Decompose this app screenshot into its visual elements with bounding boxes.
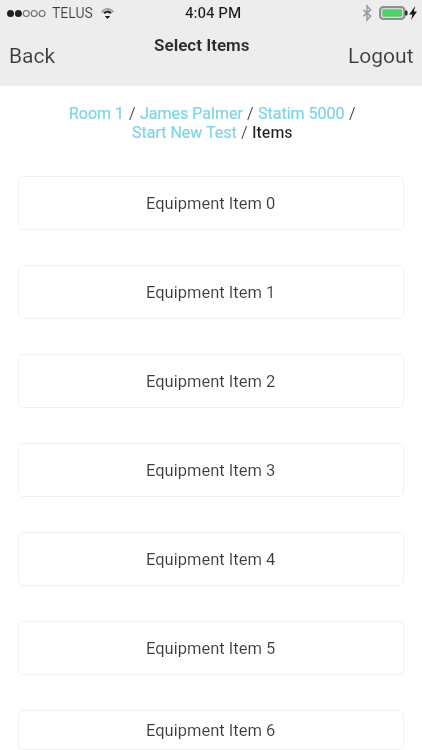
other: Battery full bbox=[379, 6, 408, 20]
staticText: 4:04 PM bbox=[185, 4, 242, 22]
staticText: Items bbox=[252, 123, 293, 142]
staticText: Equipment Item 1 bbox=[146, 283, 276, 302]
button[interactable]: Equipment Item 3 bbox=[18, 443, 404, 497]
staticText: Back bbox=[9, 44, 56, 69]
staticText: Equipment Item 3 bbox=[146, 461, 276, 480]
staticText: Equipment Item 6 bbox=[146, 721, 276, 740]
button[interactable]: Logout bbox=[332, 36, 422, 77]
staticText: Equipment Item 0 bbox=[146, 194, 276, 213]
other: Bluetooth on bbox=[363, 6, 371, 20]
staticText: / bbox=[243, 104, 258, 123]
button[interactable]: Equipment Item 0 bbox=[18, 176, 404, 230]
staticText: Equipment Item 2 bbox=[146, 372, 276, 391]
staticText: James Palmer bbox=[140, 104, 243, 123]
staticText: Select Items bbox=[154, 35, 250, 55]
staticText: Statim 5000 bbox=[258, 104, 345, 123]
staticText: / bbox=[237, 123, 252, 142]
other: Wi-Fi connected bbox=[100, 6, 115, 20]
staticText: Equipment Item 4 bbox=[146, 550, 276, 569]
staticText: Start New Test bbox=[132, 123, 237, 142]
button[interactable]: Start New Test bbox=[132, 123, 237, 142]
button[interactable]: James Palmer bbox=[140, 104, 243, 123]
button[interactable]: Equipment Item 1 bbox=[18, 265, 404, 319]
button[interactable]: Equipment Item 6 bbox=[18, 710, 404, 750]
staticText: / bbox=[125, 104, 140, 123]
button[interactable]: Room 1 bbox=[69, 104, 125, 123]
button[interactable]: Equipment Item 5 bbox=[18, 621, 404, 675]
button[interactable]: Equipment Item 2 bbox=[18, 354, 404, 408]
button[interactable]: Equipment Item 4 bbox=[18, 532, 404, 586]
other: Charging bbox=[409, 6, 417, 20]
staticText: Logout bbox=[348, 44, 414, 69]
other: Signal strength two of five bbox=[7, 10, 45, 17]
button[interactable]: Back bbox=[0, 36, 72, 77]
staticText: / bbox=[345, 104, 356, 123]
staticText: TELUS bbox=[52, 5, 93, 21]
button[interactable]: Statim 5000 bbox=[258, 104, 345, 123]
staticText: Room 1 bbox=[69, 104, 125, 123]
staticText: Equipment Item 5 bbox=[146, 639, 276, 658]
